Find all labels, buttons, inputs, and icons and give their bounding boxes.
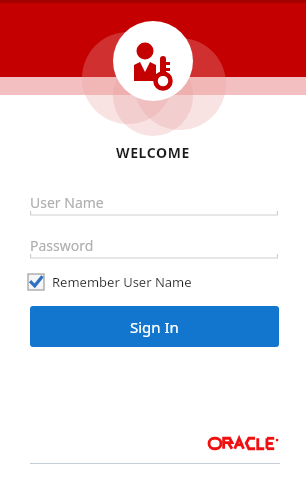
- staticText: User Name: [30, 193, 104, 212]
- staticText: WELCOME: [0, 143, 306, 162]
- staticText: Sign In: [130, 317, 179, 337]
- button[interactable]: User Name input: [30, 188, 278, 216]
- other: Oracle: [209, 437, 271, 450]
- staticText: Remember User Name: [52, 273, 192, 291]
- button[interactable]: Remember User Name: [28, 270, 192, 294]
- staticText: Password: [30, 236, 94, 255]
- button[interactable]: Sign In: [30, 306, 279, 347]
- button[interactable]: Password input: [30, 231, 278, 259]
